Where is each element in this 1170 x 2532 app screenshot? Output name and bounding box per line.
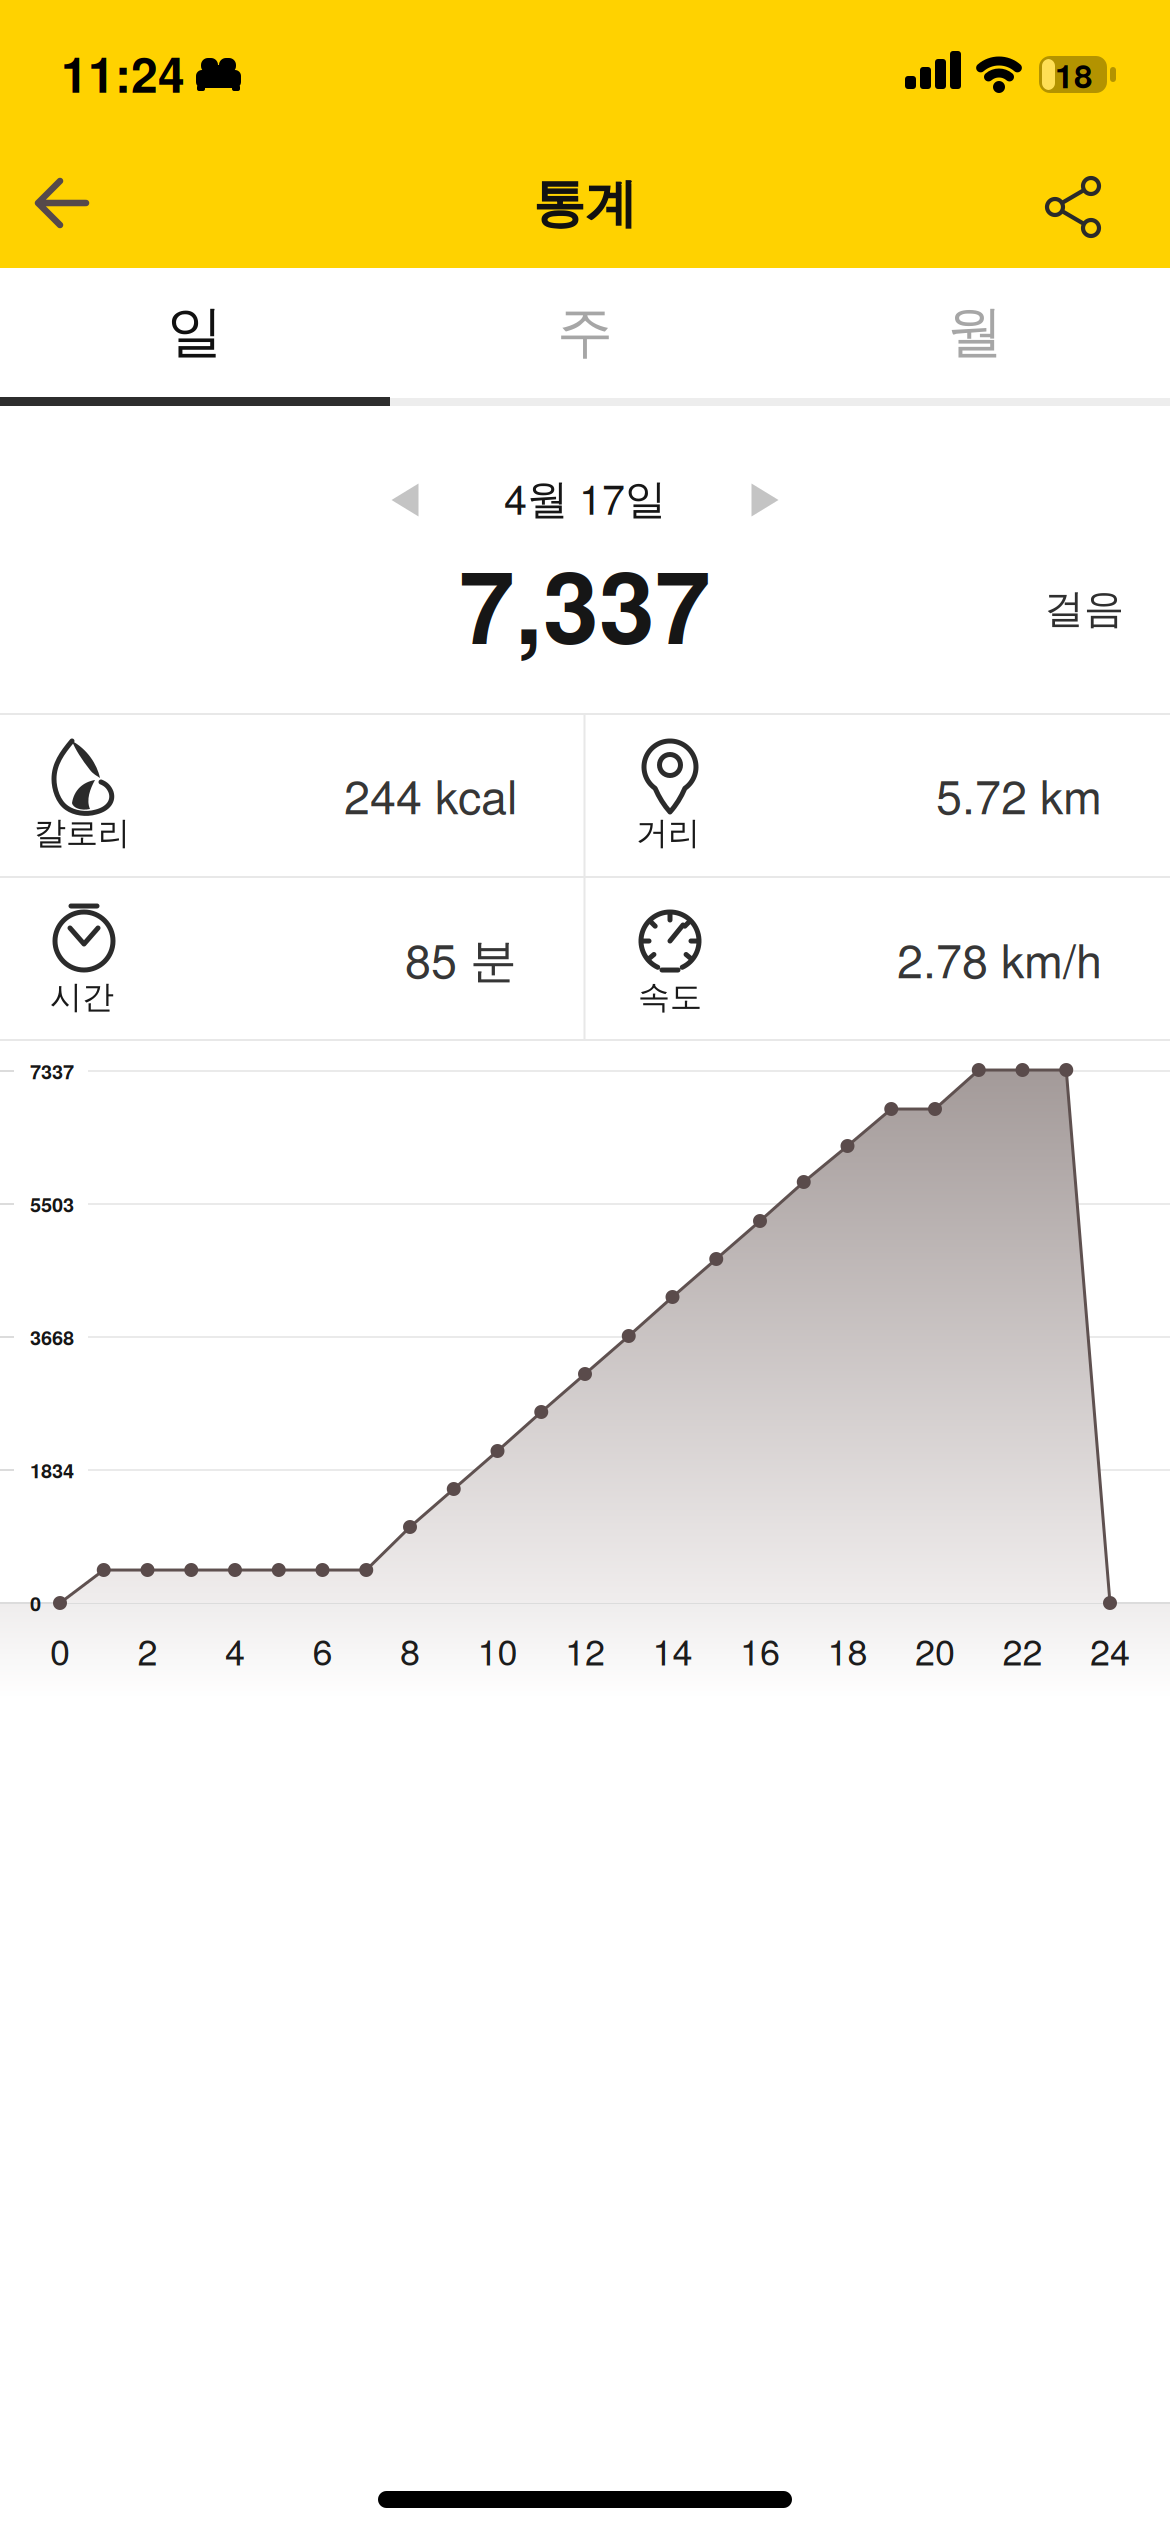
- button[interactable]: 주: [390, 269, 780, 395]
- staticText: 월: [947, 298, 1003, 366]
- staticText: 0: [50, 1624, 70, 1676]
- staticText: 7337: [30, 1057, 74, 1085]
- staticText: 14: [652, 1624, 692, 1676]
- staticText: 20: [915, 1624, 955, 1676]
- staticText: 1834: [30, 1456, 74, 1484]
- staticText: 18: [1055, 51, 1093, 98]
- button[interactable]: Back: [36, 179, 88, 227]
- staticText: 칼로리: [34, 813, 130, 853]
- staticText: 시간: [50, 977, 114, 1017]
- button[interactable]: 일: [0, 269, 390, 395]
- button[interactable]: Next day: [751, 483, 778, 516]
- staticText: 85 분: [405, 925, 517, 991]
- button[interactable]: 월: [780, 269, 1170, 395]
- staticText: 2.78 km/h: [897, 925, 1102, 991]
- staticText: 8: [400, 1624, 420, 1676]
- staticText: 12: [565, 1624, 605, 1676]
- staticText: 10: [477, 1624, 517, 1676]
- staticText: 0: [30, 1589, 41, 1617]
- staticText: 거리: [636, 813, 700, 853]
- staticText: 24: [1090, 1624, 1130, 1676]
- staticText: 일: [167, 298, 223, 366]
- staticText: 6: [312, 1624, 332, 1676]
- staticText: 통계: [533, 172, 637, 236]
- staticText: 5503: [30, 1190, 74, 1218]
- staticText: 244 kcal: [344, 761, 517, 827]
- staticText: 16: [740, 1624, 780, 1676]
- staticText: 주: [557, 298, 613, 366]
- staticText: 2: [137, 1624, 157, 1676]
- staticText: 18: [827, 1624, 867, 1676]
- staticText: 5.72 km: [936, 761, 1102, 827]
- staticText: 걸음: [1044, 584, 1124, 633]
- staticText: 3668: [30, 1323, 74, 1351]
- staticText: 11:24: [61, 39, 185, 107]
- staticText: 22: [1002, 1624, 1042, 1676]
- staticText: 4월 17일: [504, 467, 666, 527]
- button[interactable]: Share: [1040, 172, 1106, 242]
- staticText: 속도: [638, 977, 702, 1017]
- button[interactable]: Previous day: [391, 483, 418, 516]
- staticText: 7,337: [459, 531, 711, 675]
- staticText: 4: [225, 1624, 245, 1676]
